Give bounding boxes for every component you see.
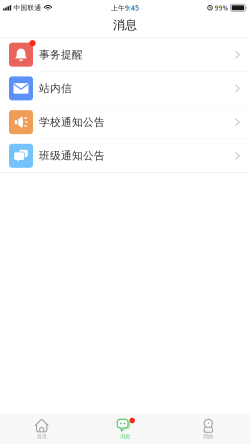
staticText: 99% [213,3,231,12]
button[interactable]: 消息 [83,414,167,444]
staticText: 消息 [113,18,137,32]
staticText: 消息 [120,433,130,440]
button[interactable]: 首页 [0,414,83,444]
button[interactable]: 事务提醒 [0,38,250,71]
staticText: 班级通知公告 [39,149,105,162]
button[interactable]: 站内信 [0,72,250,105]
staticText: 站内信 [39,82,72,95]
staticText: 事务提醒 [39,48,83,61]
button[interactable]: 班级通知公告 [0,139,250,172]
button[interactable]: 我的 [167,414,250,444]
button[interactable]: 学校通知公告 [0,105,250,139]
staticText: 学校通知公告 [39,115,105,129]
staticText: 上午9:45 [111,3,139,12]
staticText: 中国联通 [11,4,43,12]
staticText: 首页 [37,433,47,440]
staticText: 我的 [203,433,213,440]
